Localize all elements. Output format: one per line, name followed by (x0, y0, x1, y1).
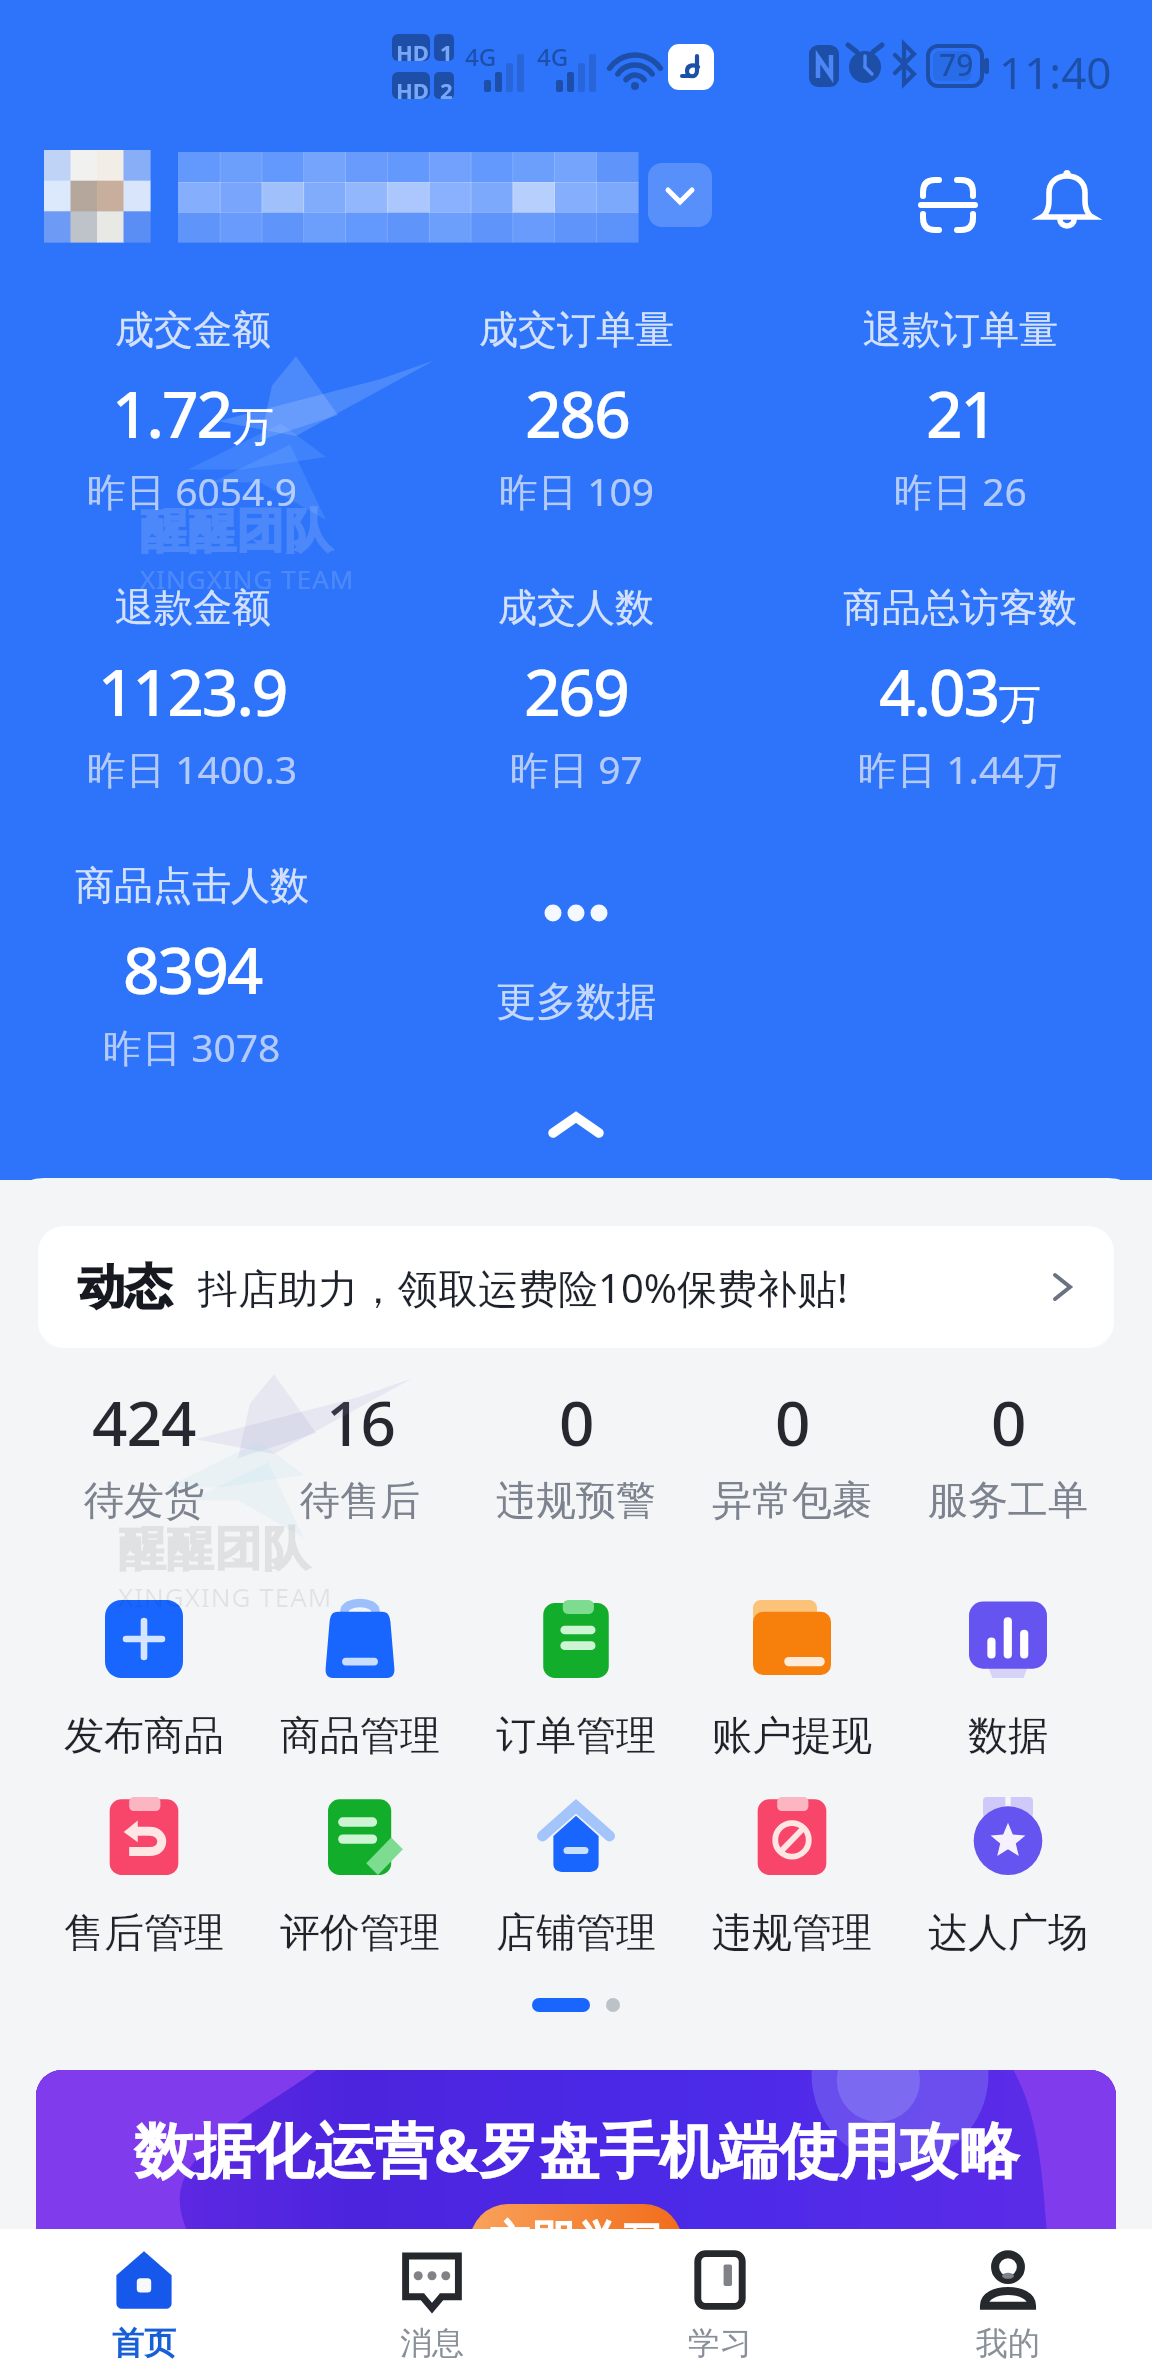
staticText: 醒醒团队 (140, 502, 332, 561)
staticText: 服务工单 (928, 1475, 1088, 1525)
staticText: 待发货 (84, 1475, 204, 1525)
button[interactable]: 0 (468, 1380, 684, 1525)
staticText: 商品点击人数 (75, 861, 309, 910)
button[interactable]: 16 (252, 1380, 468, 1525)
staticText: 动态 (78, 1258, 172, 1317)
staticText: 昨日 97 (510, 742, 643, 795)
button[interactable]: 数据 (900, 1600, 1116, 1760)
staticText: 0 (559, 1380, 594, 1464)
staticText: 0 (991, 1380, 1026, 1464)
staticText: 昨日 1400.3 (87, 742, 298, 795)
button[interactable]: 消息 (288, 2229, 576, 2376)
staticText: 16 (326, 1380, 395, 1464)
button[interactable]: 评价管理 (252, 1797, 468, 1957)
staticText: 成交人数 (498, 583, 654, 632)
staticText: 成交订单量 (479, 305, 674, 354)
staticText: 抖店助力，领取运费险10%保费补贴! (198, 1260, 848, 1315)
staticText: 万 (232, 401, 274, 454)
staticText: 11:40 (999, 42, 1112, 102)
staticText: 我的 (976, 2323, 1040, 2363)
staticText: 评价管理 (280, 1907, 440, 1957)
button[interactable]: Scan (903, 160, 993, 250)
staticText: 待售后 (300, 1475, 420, 1525)
button[interactable]: 0 (900, 1380, 1116, 1525)
staticText: 首页 (112, 2323, 176, 2363)
button[interactable]: 店铺管理 (468, 1797, 684, 1957)
staticText: 更多数据 (496, 976, 656, 1026)
button[interactable]: 发布商品 (36, 1600, 252, 1760)
staticText: 4G (465, 40, 497, 73)
staticText: 消息 (400, 2323, 464, 2363)
button[interactable]: 0 (684, 1380, 900, 1525)
staticText: 达人广场 (928, 1907, 1088, 1957)
staticText: 售后管理 (64, 1907, 224, 1957)
staticText: 1123.9 (98, 648, 287, 735)
staticText: 79 (939, 44, 974, 85)
staticText: 269 (524, 648, 628, 735)
staticText: 4G (537, 40, 569, 73)
staticText: 1 (440, 37, 453, 67)
staticText: 1.72 (112, 370, 232, 457)
staticText: 异常包裹 (712, 1475, 872, 1525)
staticText: 424 (92, 1380, 196, 1464)
button[interactable]: 订单管理 (468, 1600, 684, 1760)
staticText: 退款金额 (115, 583, 271, 632)
staticText: 286 (525, 370, 629, 457)
staticText: 昨日 1.44万 (858, 742, 1063, 795)
button[interactable]: 首页 (0, 2229, 288, 2376)
staticText: 订单管理 (496, 1710, 656, 1760)
button[interactable]: 424 (36, 1380, 252, 1525)
staticText: 立即学习 (488, 2215, 664, 2229)
staticText: 数据 (968, 1710, 1048, 1760)
staticText: XINGXING TEAM (118, 1579, 333, 1614)
staticText: 昨日 6054.9 (87, 464, 298, 517)
staticText: 8394 (123, 926, 262, 1013)
staticText: 醒醒团队 (118, 1520, 310, 1579)
staticText: 发布商品 (64, 1710, 224, 1760)
staticText: 学习 (688, 2323, 752, 2363)
button[interactable]: 数据化运营&罗盘手机端使用攻略 (36, 2070, 1116, 2229)
button[interactable]: 动态 (38, 1226, 1114, 1348)
button[interactable]: 违规管理 (684, 1797, 900, 1957)
staticText: 店铺管理 (496, 1907, 656, 1957)
button[interactable]: 我的 (864, 2229, 1152, 2376)
staticText: 万 (999, 679, 1041, 732)
staticText: HD (396, 37, 429, 67)
button[interactable]: Notifications (1022, 156, 1112, 246)
button[interactable]: Switch shop (648, 163, 712, 227)
staticText: 2 (440, 75, 453, 105)
button[interactable]: 达人广场 (900, 1797, 1116, 1957)
staticText: 昨日 26 (894, 464, 1027, 517)
staticText: XINGXING TEAM (140, 561, 355, 596)
button[interactable]: Collapse panel (0, 1085, 1152, 1165)
staticText: 违规管理 (712, 1907, 872, 1957)
staticText: 商品管理 (280, 1710, 440, 1760)
button[interactable]: 商品管理 (252, 1600, 468, 1760)
button[interactable]: 学习 (576, 2229, 864, 2376)
staticText: 违规预警 (496, 1475, 656, 1525)
staticText: 商品总访客数 (843, 583, 1077, 632)
staticText: 成交金额 (115, 305, 271, 354)
staticText: 21 (926, 370, 996, 457)
staticText: 账户提现 (712, 1710, 872, 1760)
button[interactable]: 售后管理 (36, 1797, 252, 1957)
button[interactable]: 账户提现 (684, 1600, 900, 1760)
staticText: 数据化运营&罗盘手机端使用攻略 (134, 2108, 1019, 2190)
staticText: 0 (775, 1380, 810, 1464)
staticText: 退款订单量 (863, 305, 1058, 354)
button[interactable]: 商品点击人数 (0, 861, 384, 1073)
staticText: 4.03 (879, 648, 999, 735)
staticText: HD (396, 75, 429, 105)
staticText: 昨日 109 (499, 464, 655, 517)
staticText: 昨日 3078 (103, 1020, 281, 1073)
button[interactable]: 更多数据 (384, 861, 768, 1026)
